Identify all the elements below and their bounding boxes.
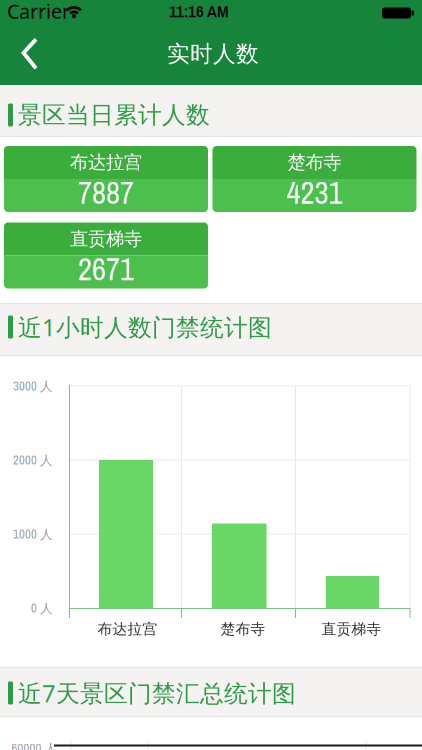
staticText: 7887	[78, 172, 134, 213]
staticText: 直贡梯寺	[321, 620, 381, 638]
staticText: 楚布寺	[287, 151, 341, 174]
staticText: 4231	[286, 172, 342, 213]
staticText: 布达拉宫	[97, 620, 157, 638]
staticText: 近1小时人数门禁统计图	[18, 311, 272, 343]
staticText: 近7天景区门禁汇总统计图	[18, 677, 296, 709]
staticText: 2671	[78, 248, 134, 290]
staticText: 2000 人	[13, 451, 53, 469]
staticText: Carrier	[7, 0, 70, 24]
staticText: 布达拉宫	[70, 151, 142, 174]
staticText: 1000 人	[13, 525, 53, 543]
staticText: 60000 人	[11, 739, 57, 750]
staticText: 3000 人	[13, 377, 53, 395]
staticText: 11:16 AM	[169, 0, 229, 22]
staticText: 直贡梯寺	[70, 227, 142, 250]
staticText: 0 人	[31, 599, 53, 617]
staticText: 景区当日累计人数	[18, 100, 210, 130]
staticText: 楚布寺	[220, 620, 265, 638]
staticText: 实时人数	[167, 40, 259, 68]
